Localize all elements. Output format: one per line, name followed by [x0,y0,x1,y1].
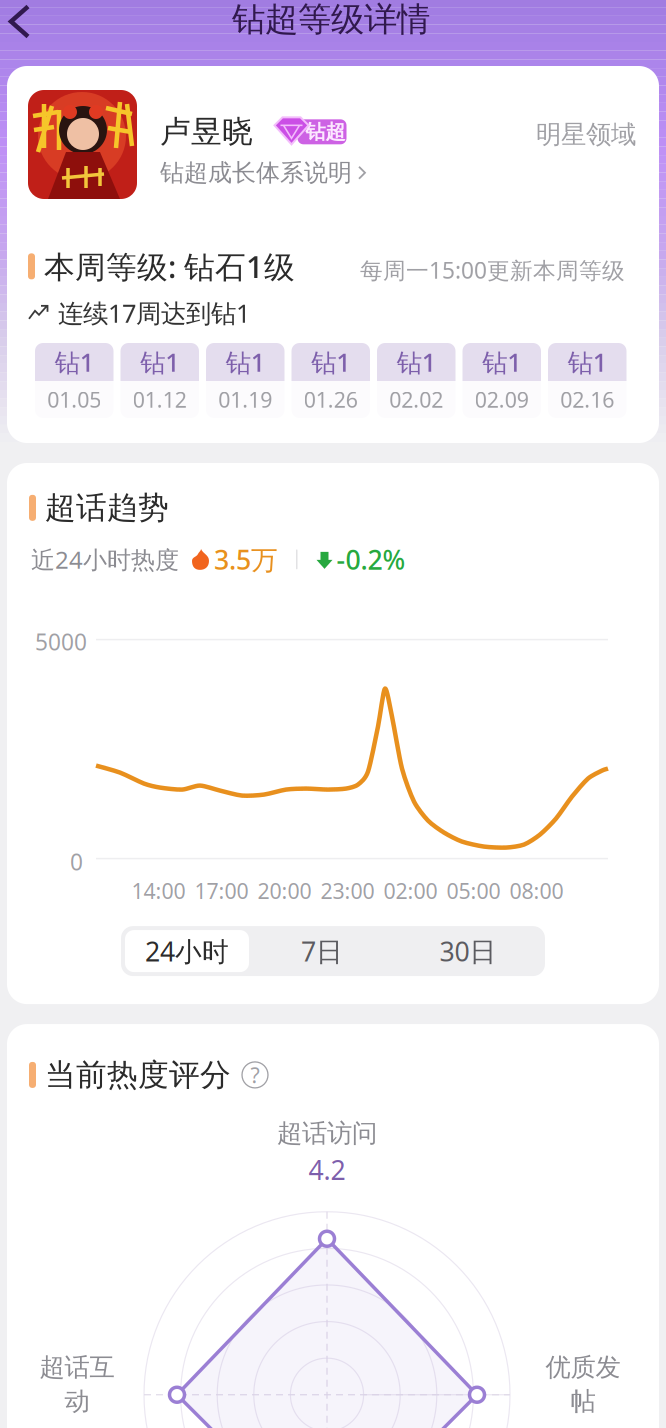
staticText: 明星领域 [536,119,636,150]
staticText: 01.19 [218,385,272,414]
staticText: 当前热度评分 [45,1056,231,1094]
button[interactable]: 7日 [249,930,395,972]
staticText: 超话互 [39,1352,114,1383]
staticText: 卢昱晓 [160,113,253,151]
staticText: 本周等级: 钻石1级 [44,246,295,287]
staticText: 连续17周达到钻1 [58,296,250,330]
staticText: 02.16 [560,385,614,414]
staticText: 钻1 [55,345,94,379]
button[interactable]: 24小时 [125,930,249,972]
staticText: 超话趋势 [45,489,169,527]
staticText: -0.2% [336,542,405,577]
button[interactable]: Back [0,0,44,44]
staticText: 帖 [570,1386,595,1417]
staticText: 超话访问 [277,1118,377,1149]
staticText: 钻1 [311,345,350,379]
staticText: 01.26 [304,385,358,414]
staticText: 优质发 [545,1352,620,1383]
staticText: 23:00 [320,877,374,905]
staticText: 24小时 [145,933,229,969]
staticText: 02:00 [383,877,437,905]
staticText: 30日 [439,933,496,969]
staticText: 17:00 [194,877,248,905]
staticText: 钻1 [397,345,436,379]
button[interactable]: 30日 [395,930,541,972]
staticText: 近24小时热度 [31,543,179,575]
button[interactable]: Help [242,1062,268,1088]
staticText: 0 [70,847,83,877]
staticText: 钻超 [305,120,345,144]
staticText: 钻超等级详情 [232,0,430,40]
staticText: 01.05 [47,385,101,414]
staticText: 02.02 [389,385,443,414]
staticText: 01.12 [133,385,187,414]
staticText: 05:00 [446,877,500,905]
staticText: 20:00 [257,877,311,905]
staticText: 02.09 [475,385,529,414]
staticText: 钻1 [482,345,521,379]
staticText: 5000 [35,627,87,657]
staticText: 钻1 [226,345,265,379]
staticText: 7日 [301,933,343,969]
staticText: 钻超成长体系说明 [160,158,352,187]
staticText: 08:00 [509,877,563,905]
button[interactable]: 钻超成长体系说明 [158,153,369,192]
staticText: 14:00 [131,877,185,905]
staticText: 4.2 [308,1152,345,1187]
staticText: 每周一15:00更新本周等级 [360,255,625,285]
staticText: 3.5万 [214,542,278,577]
staticText: 钻1 [568,345,607,379]
staticText: 钻1 [140,345,179,379]
staticText: 动 [64,1386,89,1417]
staticText: ? [250,1061,259,1089]
